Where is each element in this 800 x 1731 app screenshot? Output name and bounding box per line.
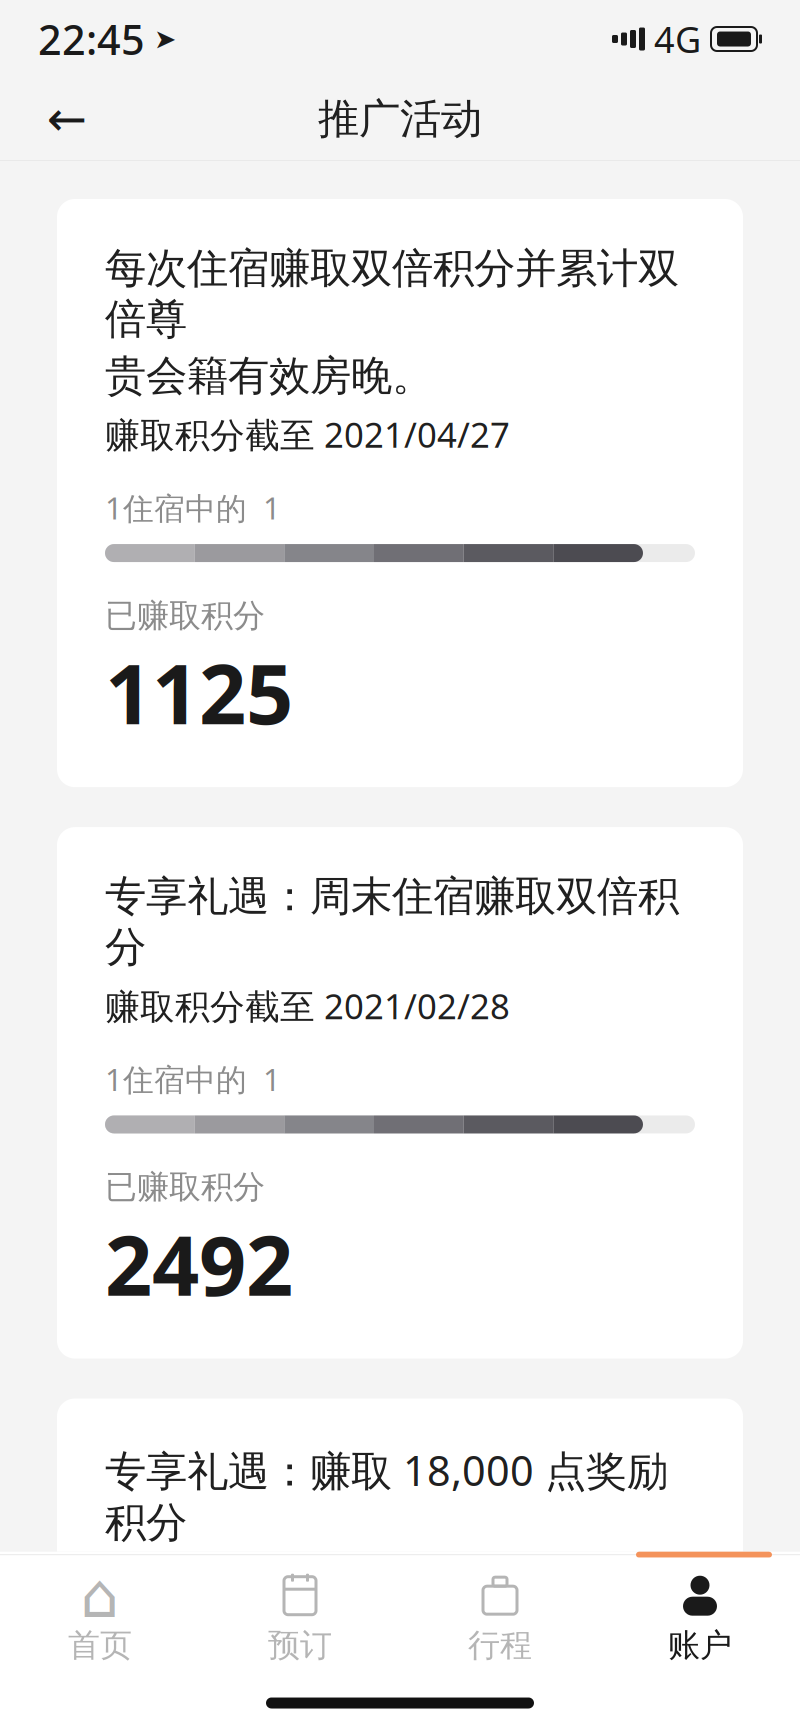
staticText: 1住宿中的 1 bbox=[105, 1059, 281, 1099]
button[interactable]: Back bbox=[30, 82, 104, 156]
staticText: 贵会籍有效房晚。 bbox=[105, 350, 433, 401]
button[interactable]: ⌂ bbox=[0, 1558, 200, 1675]
button[interactable]: 行程 bbox=[400, 1558, 600, 1675]
staticText: 赚取积分截至 2021/04/27 bbox=[105, 411, 510, 457]
staticText: ← bbox=[47, 92, 87, 146]
staticText: 推广活动 bbox=[318, 94, 482, 144]
staticText: 赚取积分截至 2021/02/28 bbox=[105, 983, 510, 1029]
button[interactable]: 账户 bbox=[600, 1558, 800, 1675]
staticText: 22:45 bbox=[38, 12, 145, 66]
staticText: 已赚取积分 bbox=[105, 1167, 265, 1207]
staticText: 1住宿中的 1 bbox=[105, 487, 281, 528]
staticText: 预订 bbox=[268, 1626, 332, 1665]
staticText: 每次住宿赚取双倍积分并累计双倍尊 bbox=[105, 243, 679, 344]
staticText: 4G bbox=[645, 15, 701, 63]
staticText: ⌂ bbox=[80, 1561, 119, 1630]
staticText: 2492 bbox=[105, 1209, 293, 1319]
staticText: 账户 bbox=[668, 1626, 732, 1665]
staticText: 专享礼遇：周末住宿赚取双倍积分 bbox=[105, 871, 679, 973]
staticText: 已赚取积分 bbox=[105, 596, 265, 635]
staticText: ➤ bbox=[145, 24, 176, 54]
staticText: 行程 bbox=[468, 1626, 532, 1665]
staticText: 专享礼遇：赚取 18,000 点奖励积分 bbox=[105, 1442, 668, 1548]
staticText: 首页 bbox=[68, 1626, 132, 1665]
button[interactable]: 预订 bbox=[200, 1558, 400, 1675]
staticText: 1125 bbox=[105, 637, 293, 747]
staticText: 2住宿中的 1 bbox=[105, 1634, 281, 1675]
staticText: 赚取积分截至 2021/04/30 bbox=[105, 1558, 510, 1604]
